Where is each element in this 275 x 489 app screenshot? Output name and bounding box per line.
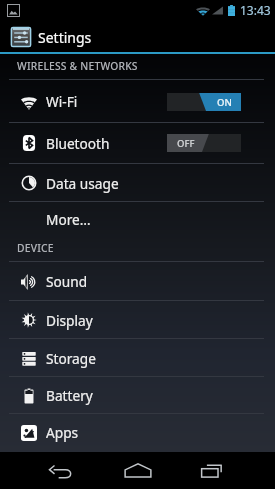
button[interactable]: Sound: [0, 262, 275, 301]
staticText: Settings: [38, 28, 92, 47]
staticText: Storage: [46, 349, 96, 368]
button[interactable]: Data usage: [0, 164, 275, 202]
staticText: Sound: [46, 272, 88, 291]
staticText: Display: [46, 311, 93, 330]
button[interactable]: Switch off: [167, 134, 241, 152]
staticText: DEVICE: [17, 241, 54, 255]
button[interactable]: Apps: [0, 413, 275, 452]
button[interactable]: Switch on: [167, 93, 241, 111]
button[interactable]: Home: [99, 452, 176, 489]
button[interactable]: Battery: [0, 377, 275, 414]
button[interactable]: Bluetooth: [0, 122, 275, 164]
staticText: Bluetooth: [46, 134, 110, 153]
button[interactable]: Back: [22, 452, 98, 489]
staticText: ON: [217, 96, 232, 109]
staticText: Data usage: [46, 174, 119, 193]
button[interactable]: Recent apps: [173, 452, 249, 489]
staticText: 13:43: [240, 2, 271, 18]
staticText: More…: [46, 210, 91, 229]
staticText: WIRELESS & NETWORKS: [17, 59, 138, 73]
staticText: Wi-Fi: [46, 92, 78, 111]
button[interactable]: Wi-Fi: [0, 80, 275, 123]
staticText: OFF: [177, 137, 195, 150]
staticText: Battery: [46, 386, 93, 405]
button[interactable]: More…: [0, 202, 275, 237]
staticText: Apps: [46, 423, 79, 442]
button[interactable]: Display: [0, 301, 275, 339]
button[interactable]: Storage: [0, 339, 275, 377]
